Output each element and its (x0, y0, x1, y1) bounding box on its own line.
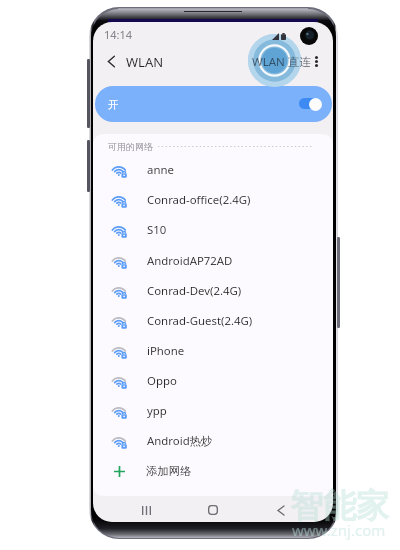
button[interactable]: WLAN 直连 (252, 49, 311, 74)
staticText: AndroidAP72AD (147, 253, 233, 269)
staticText: 开 (108, 98, 119, 111)
button[interactable]: ypp (93, 396, 333, 426)
staticText: ypp (147, 403, 167, 419)
button[interactable]: Recent apps (128, 496, 164, 522)
staticText: Conrad-office(2.4G) (147, 192, 251, 208)
button[interactable]: 添加网络 (93, 456, 333, 486)
button[interactable]: Android热炒 (93, 426, 333, 456)
staticText: S10 (147, 222, 167, 238)
staticText: 可用的网络 (108, 141, 153, 152)
button[interactable]: Conrad-Dev(2.4G) (93, 276, 333, 306)
staticText: Android热炒 (147, 433, 213, 449)
staticText: WLAN (126, 53, 164, 71)
staticText: Oppo (147, 373, 177, 389)
button[interactable]: Back (263, 496, 299, 522)
button[interactable]: anne (93, 155, 333, 185)
staticText: Conrad-Dev(2.4G) (147, 283, 242, 299)
staticText: WLAN 直连 (252, 54, 311, 70)
button[interactable]: Conrad-office(2.4G) (93, 185, 333, 215)
button[interactable]: Back (99, 49, 124, 74)
staticText: 智能家 (290, 485, 389, 527)
button[interactable]: More options (308, 49, 324, 74)
staticText: 14:14 (104, 27, 133, 42)
button[interactable]: 开 (95, 86, 332, 122)
staticText: www.znj.com (292, 520, 386, 540)
button[interactable]: iPhone (93, 336, 333, 366)
button[interactable]: Oppo (93, 366, 333, 396)
button[interactable]: Conrad-Guest(2.4G) (93, 306, 333, 336)
staticText: anne (147, 162, 174, 178)
staticText: 添加网络 (146, 464, 192, 478)
button[interactable]: AndroidAP72AD (93, 246, 333, 276)
staticText: Conrad-Guest(2.4G) (147, 313, 253, 329)
button[interactable]: S10 (93, 215, 333, 245)
staticText: iPhone (147, 343, 185, 359)
button[interactable]: Home (195, 496, 231, 522)
